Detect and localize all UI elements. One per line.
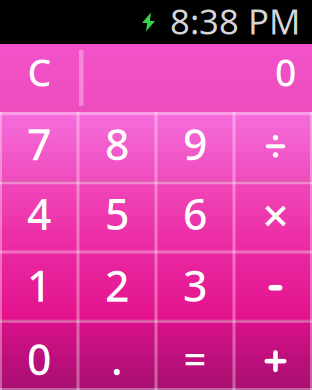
button[interactable]: 2 — [78, 251, 156, 320]
button[interactable]: C — [0, 44, 79, 112]
staticText: 2 — [105, 257, 129, 314]
button[interactable]: 4 — [0, 181, 78, 251]
staticText: 5 — [105, 185, 129, 242]
button[interactable]: Minus — [234, 251, 312, 320]
staticText: 7 — [27, 115, 51, 172]
button[interactable]: 0 — [0, 320, 78, 390]
staticText: = — [183, 332, 206, 385]
button[interactable]: 7 — [0, 112, 78, 181]
staticText: 8 — [105, 115, 129, 172]
button[interactable]: 5 — [78, 181, 156, 251]
staticText: 0 — [27, 330, 51, 387]
button[interactable]: = — [156, 320, 234, 390]
staticText: 9 — [183, 115, 207, 172]
staticText: 4 — [27, 185, 51, 242]
button[interactable]: Plus — [234, 320, 312, 390]
staticText: 1 — [27, 257, 51, 314]
button[interactable]: 9 — [156, 112, 234, 181]
button[interactable]: Divide — [234, 112, 312, 181]
button[interactable]: 8 — [78, 112, 156, 181]
staticText: 8:38 PM — [170, 0, 300, 44]
button[interactable]: Multiply — [234, 181, 312, 251]
button[interactable]: 3 — [156, 251, 234, 320]
staticText: 6 — [183, 185, 207, 242]
button[interactable]: 6 — [156, 181, 234, 251]
staticText: 3 — [183, 257, 207, 314]
staticText: C — [27, 47, 51, 97]
staticText: . — [111, 330, 123, 387]
button[interactable]: . — [78, 320, 156, 390]
button[interactable]: 1 — [0, 251, 78, 320]
staticText: 0 — [275, 47, 296, 97]
